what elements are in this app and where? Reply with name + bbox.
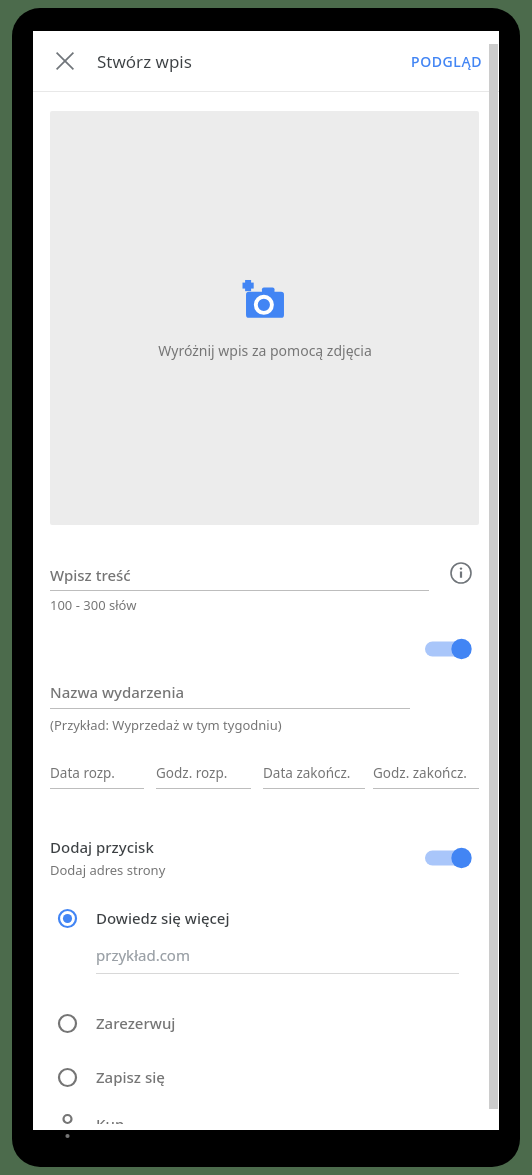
button[interactable]: PODGLĄD [395,42,499,81]
staticText: Godz. rozp. [156,764,228,782]
staticText: Dodaj przycisk [50,837,154,857]
button[interactable]: Data zakończ. [263,764,365,789]
button[interactable]: Zarezerwuj [50,1000,479,1046]
staticText: Dodaj adres strony [50,861,166,879]
staticText: PODGLĄD [411,52,483,71]
button[interactable]: Wyróżnij wpis za pomocą zdjęcia [50,111,479,525]
staticText: Zapisz się [96,1067,165,1087]
button[interactable]: Zapisz się [50,1054,479,1100]
button[interactable]: Dowiedz się więcej [50,895,479,941]
staticText: Wpisz treść [50,565,131,585]
button[interactable]: Godz. rozp. [156,764,251,789]
staticText: Zarezerwuj [96,1013,176,1033]
staticText: Data rozp. [50,764,115,782]
button[interactable]: Przełącznik [425,632,479,666]
staticText: Stwórz wpis [97,50,192,73]
button[interactable]: Data rozp. [50,764,144,789]
staticText: Nazwa wydarzenia [50,682,185,702]
staticText: Wyróżnij wpis za pomocą zdjęcia [158,341,372,360]
staticText: Kup [96,1114,125,1124]
staticText: Dowiedz się więcej [96,908,230,928]
button[interactable]: Informacje [443,555,479,591]
staticText: przykład.com [96,945,190,965]
button[interactable]: Kup [50,1108,479,1130]
button[interactable]: Przełącznik [425,841,479,875]
staticText: 100 - 300 słów [50,596,137,614]
button[interactable]: Godz. zakończ. [373,764,479,789]
button[interactable]: Zamknij [41,37,89,85]
staticText: (Przykład: Wyprzedaż w tym tygodniu) [50,716,282,734]
staticText: Data zakończ. [263,764,351,782]
staticText: Godz. zakończ. [373,764,467,782]
